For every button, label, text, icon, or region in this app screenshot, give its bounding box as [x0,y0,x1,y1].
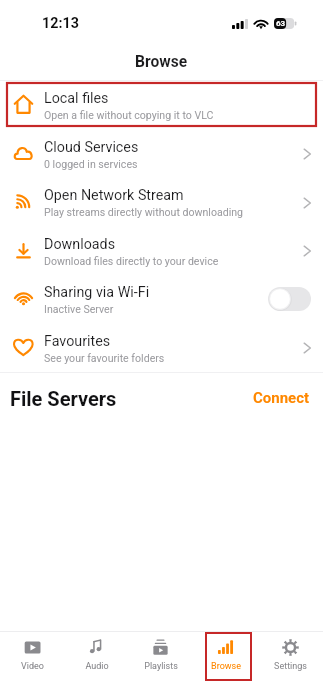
staticText: Play streams directly without downloadin… [44,206,244,218]
button[interactable]: Toggle Wi-Fi sharing [268,287,311,311]
staticText: Open Network Stream [44,187,184,204]
button[interactable]: Favourites [0,324,323,372]
button[interactable]: Browse [193,631,258,700]
staticText: Open a file without copying it to VLC [44,109,214,121]
staticText: Video [21,661,44,672]
button[interactable]: Video [0,631,64,700]
staticText: Download files directly to your device [44,255,219,267]
button[interactable]: Sharing via Wi-Fi [0,275,323,324]
staticText: Audio [85,661,109,672]
staticText: Settings [274,661,307,672]
staticText: Cloud Services [44,139,139,156]
staticText: 63 [276,19,286,28]
staticText: Downloads [44,236,116,253]
staticText: Browse [211,661,241,672]
staticText: Local files [44,90,109,107]
staticText: 12:13 [42,15,79,32]
staticText: Playlists [144,661,178,672]
staticText: Inactive Server [44,303,114,315]
staticText: File Servers [10,387,117,410]
staticText: Sharing via Wi-Fi [44,284,150,301]
button[interactable]: Playlists [128,631,193,700]
staticText: Connect [253,389,310,407]
button[interactable]: Settings [258,631,323,700]
staticText: 0 logged in services [44,158,138,170]
button[interactable]: Connect [240,379,323,417]
staticText: Favourites [44,333,111,350]
button[interactable]: Cloud Services [0,130,323,178]
staticText: See your favourite folders [44,352,165,364]
button[interactable]: Local files [0,81,323,130]
button[interactable]: Open Network Stream [0,178,323,227]
button[interactable]: Audio [64,631,128,700]
staticText: Browse [135,53,188,71]
button[interactable]: Downloads [0,227,323,275]
